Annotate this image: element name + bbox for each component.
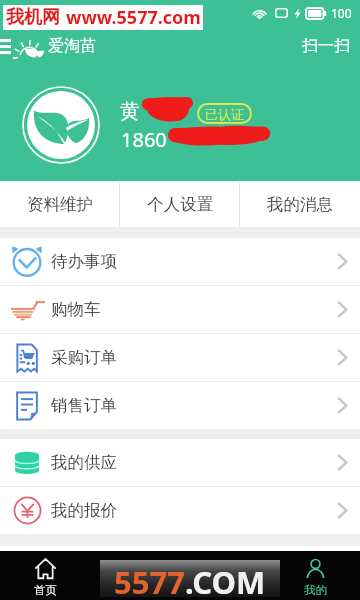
staticText: 我的报价 xyxy=(51,500,117,521)
staticText: 销售订单 xyxy=(51,395,117,416)
staticText: 购物车 xyxy=(208,583,243,597)
staticText: .COM xyxy=(185,561,266,598)
staticText: 首页 xyxy=(34,583,57,597)
staticText: 黄 xyxy=(120,99,140,124)
button[interactable]: 我的消息 xyxy=(240,181,360,227)
staticText: 100 xyxy=(331,5,352,21)
staticText: 采购订单 xyxy=(51,347,117,368)
staticText: 待办事项 xyxy=(51,251,117,272)
button[interactable]: 首页 xyxy=(0,551,90,600)
button[interactable]: 我的供应 xyxy=(0,439,360,486)
staticText: 我的供应 xyxy=(51,452,117,473)
staticText: 购物车 xyxy=(51,299,101,320)
button[interactable]: 资料维护 xyxy=(0,181,120,227)
button[interactable]: 个人设置 xyxy=(120,181,240,227)
button[interactable]: 我的 xyxy=(270,551,360,600)
staticText: 1860 xyxy=(121,126,167,153)
staticText: 我的消息 xyxy=(267,194,333,215)
staticText: 我机网 xyxy=(6,6,60,29)
staticText: 爱淘苗 xyxy=(48,36,96,56)
staticText: 供应 xyxy=(124,583,147,597)
staticText: 扫一扫 xyxy=(302,36,350,56)
button[interactable]: 销售订单 xyxy=(0,382,360,429)
staticText: 我的 xyxy=(304,583,327,597)
button[interactable]: 供应 xyxy=(90,551,180,600)
button[interactable]: 购物车 xyxy=(0,286,360,333)
staticText: www.5577.com xyxy=(66,5,201,30)
staticText: 资料维护 xyxy=(27,194,93,215)
staticText: 已认证 xyxy=(205,106,244,122)
button[interactable]: 已认证 xyxy=(197,103,252,124)
button[interactable]: 采购订单 xyxy=(0,334,360,381)
button[interactable]: 扫一扫 xyxy=(292,28,360,64)
button[interactable]: 购物车 xyxy=(180,551,270,600)
button[interactable]: 我的报价 xyxy=(0,487,360,534)
staticText: 个人设置 xyxy=(147,194,213,215)
staticText: 5577 xyxy=(114,561,185,598)
button[interactable]: Menu xyxy=(0,31,16,61)
button[interactable]: 待办事项 xyxy=(0,238,360,285)
